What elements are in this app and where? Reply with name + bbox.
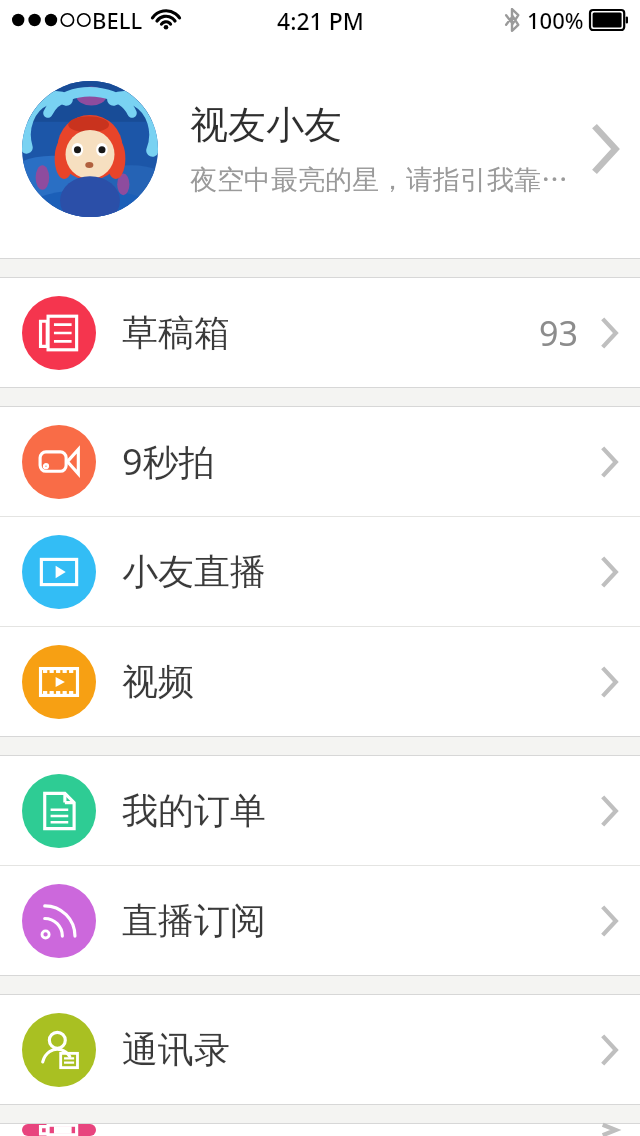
button[interactable]: 草稿箱 (0, 278, 640, 387)
button[interactable]: 小友直播 (0, 517, 640, 626)
staticText: 4:21 PM (277, 5, 364, 36)
staticText: 我的订单 (122, 788, 600, 833)
button[interactable]: 通讯录 (0, 995, 640, 1104)
staticText: 视友小友 (190, 101, 342, 149)
button[interactable]: 9秒拍 (0, 407, 640, 516)
staticText: 9秒拍 (122, 437, 600, 486)
button[interactable]: 视频 (0, 627, 640, 736)
button[interactable] (0, 1124, 640, 1136)
button[interactable]: 我的订单 (0, 756, 640, 865)
button[interactable]: 直播订阅 (0, 866, 640, 975)
staticText: 通讯录 (122, 1027, 600, 1072)
staticText: 小友直播 (122, 549, 600, 594)
staticText: 草稿箱 (122, 310, 539, 355)
staticText: 直播订阅 (122, 898, 600, 943)
button[interactable]: 视友小友 (0, 40, 640, 258)
staticText: 视频 (122, 659, 600, 704)
staticText: 100% (527, 5, 584, 35)
staticText: 夜空中最亮的星，请指引我靠近… (190, 163, 582, 197)
staticText: BELL (92, 5, 143, 35)
staticText: 93 (539, 310, 578, 356)
